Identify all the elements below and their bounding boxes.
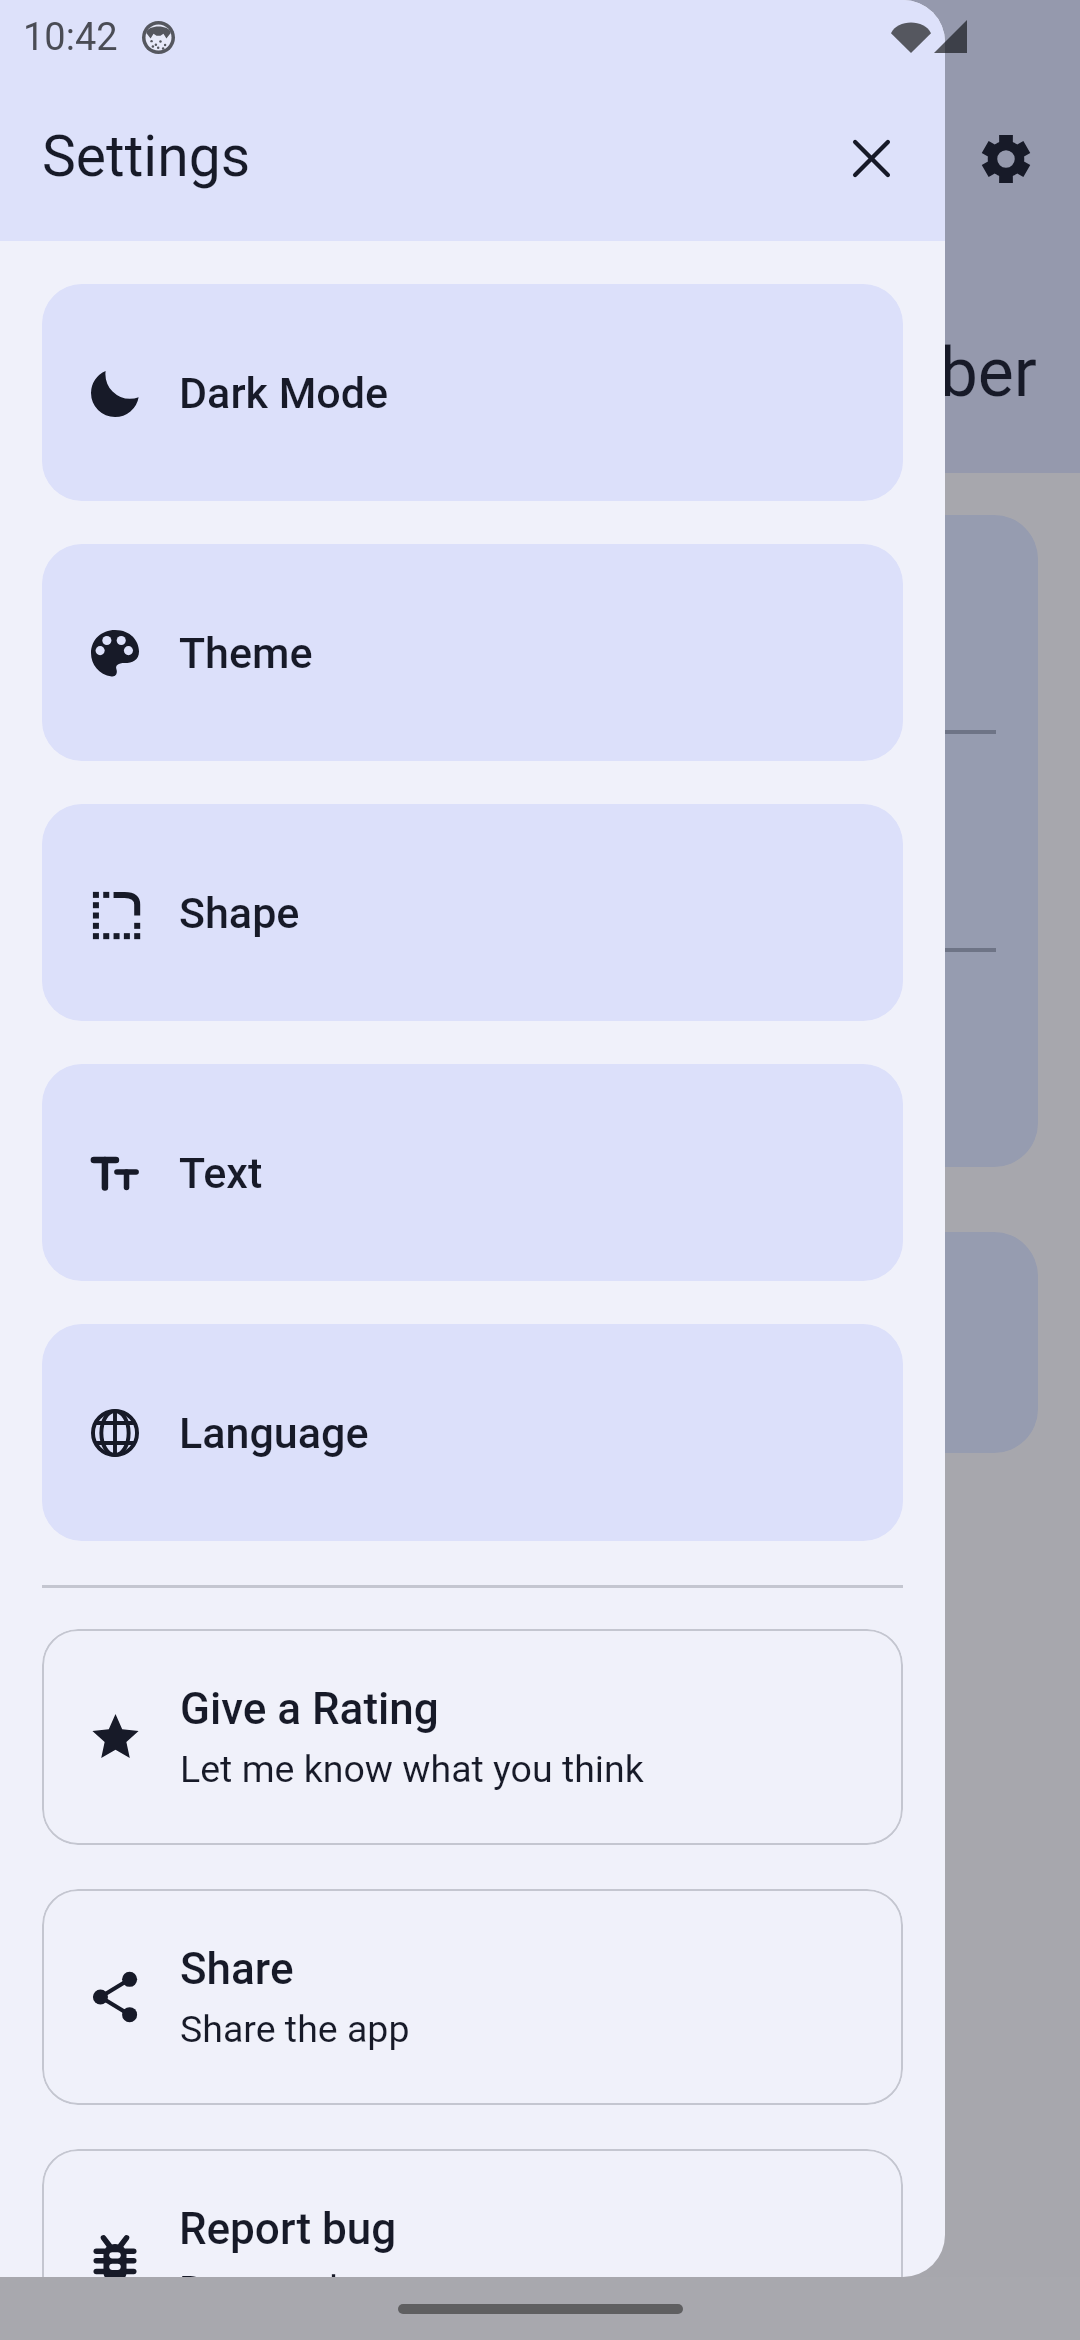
staticText: Settings [42, 123, 251, 190]
staticText: Report a bug [179, 2267, 393, 2277]
staticText: Number [794, 333, 1037, 413]
button[interactable]: Close settings [823, 110, 919, 206]
staticText: 10:42 [23, 15, 118, 60]
staticText: Share [180, 1943, 294, 1995]
staticText: Dark Mode [179, 368, 389, 418]
staticText: Share the app [180, 2007, 410, 2051]
staticText: Shape [179, 888, 300, 938]
button[interactable]: Language [42, 1324, 903, 1541]
button[interactable]: Share [42, 1889, 903, 2105]
staticText: Let me know what you think [180, 1747, 644, 1791]
button[interactable]: Give a Rating [42, 1629, 903, 1845]
staticText: Give a Rating [180, 1683, 439, 1735]
button[interactable]: Report bug [42, 2149, 903, 2277]
button[interactable]: Text [42, 1064, 903, 1281]
staticText: Report bug [179, 2203, 397, 2255]
button[interactable]: Dark Mode [42, 284, 903, 501]
staticText: Text [179, 1148, 263, 1198]
button[interactable]: Settings [981, 134, 1031, 184]
button[interactable]: Shape [42, 804, 903, 1021]
button[interactable]: Theme [42, 544, 903, 761]
staticText: Language [179, 1408, 369, 1458]
staticText: Theme [179, 628, 313, 678]
